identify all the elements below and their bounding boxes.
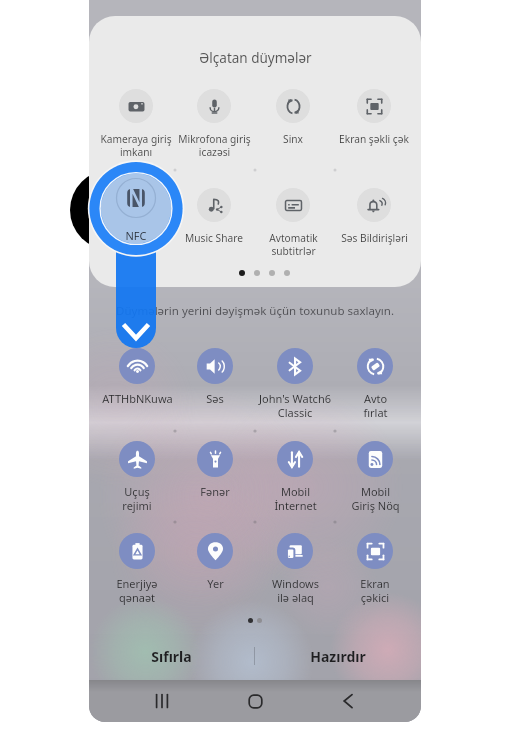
staticText: Enerjiyə qənaət (116, 576, 158, 605)
button[interactable]: Back (328, 681, 368, 721)
staticText: Fənər (200, 484, 230, 499)
button[interactable]: Yer (175, 533, 255, 591)
button[interactable]: Sıfırla (89, 638, 254, 674)
staticText: Mobil İnternet (274, 484, 317, 513)
button[interactable]: Hazırdır (255, 638, 421, 674)
button[interactable]: Səs (175, 348, 255, 406)
button[interactable]: Avtomatik subtitrlər (253, 188, 333, 258)
button[interactable]: Fənər (175, 441, 255, 499)
staticText: Sıfırla (151, 647, 192, 666)
button[interactable]: John's Watch6 Classic (255, 348, 335, 420)
staticText: Sinx (283, 132, 303, 146)
staticText: Windows ilə əlaq (272, 576, 319, 605)
staticText: Uçuş rejimi (122, 484, 152, 513)
button[interactable]: Səs Bildirişləri (334, 188, 414, 245)
staticText: Ekran şəkli çək (339, 132, 409, 146)
staticText: Səs (206, 391, 224, 406)
staticText: ATTHbNKuwa (102, 391, 173, 406)
button[interactable]: Sinx (253, 89, 333, 146)
button[interactable]: Mobil Giriş Nöq (335, 441, 415, 513)
button[interactable]: NFC (96, 188, 176, 245)
staticText: John's Watch6 Classic (259, 391, 331, 420)
staticText: Düymələrin yerini dəyişmək üçün toxunub … (116, 303, 394, 319)
button[interactable]: Enerjiyə qənaət (97, 533, 177, 605)
staticText: Səs Bildirişləri (341, 231, 408, 245)
staticText: Hazırdır (310, 647, 366, 666)
staticText: Mobil Giriş Nöq (351, 484, 400, 513)
staticText: Avto fırlat (363, 391, 388, 420)
button[interactable]: Kameraya giriş imkanı (96, 89, 176, 159)
button[interactable]: Mobil İnternet (255, 441, 335, 513)
button[interactable]: Recents (142, 681, 182, 721)
button[interactable]: Avto fırlat (335, 348, 415, 420)
staticText: Avtomatik subtitrlər (269, 231, 318, 258)
button[interactable]: ATTHbNKuwa (97, 348, 177, 406)
staticText: Əlçatan düymələr (199, 49, 312, 67)
button[interactable]: Mikrofona giriş icazəsi (174, 89, 254, 159)
staticText: Music Share (185, 231, 243, 245)
button[interactable]: Music Share (174, 188, 254, 245)
staticText: Kameraya giriş imkanı (100, 132, 172, 159)
staticText: Ekran çəkici (360, 576, 390, 605)
button[interactable]: Home (235, 681, 275, 721)
button[interactable]: NFC (99, 228, 173, 246)
button[interactable]: Ekran şəkli çək (334, 89, 414, 146)
staticText: Yer (207, 576, 224, 591)
button[interactable]: Ekran çəkici (335, 533, 415, 605)
button[interactable]: Uçuş rejimi (97, 441, 177, 513)
staticText: NFC (126, 231, 146, 245)
staticText: NFC (125, 228, 147, 243)
staticText: Mikrofona giriş icazəsi (178, 132, 251, 159)
button[interactable]: Windows ilə əlaq (255, 533, 335, 605)
